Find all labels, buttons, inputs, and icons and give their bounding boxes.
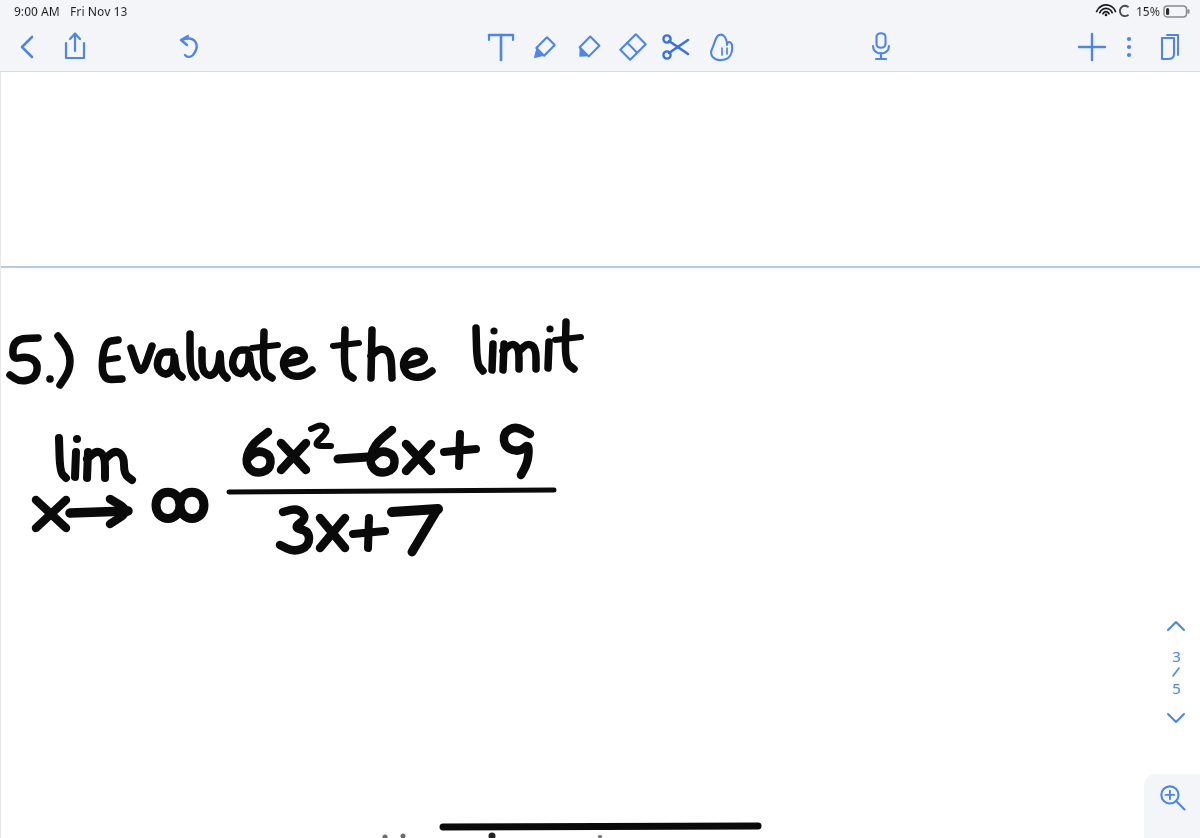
staticText: 3 <box>1172 646 1181 666</box>
staticText: Fri Nov 13 <box>70 3 128 19</box>
button[interactable]: Cut <box>655 25 699 69</box>
button[interactable]: Select <box>699 25 743 69</box>
button[interactable]: More options <box>1114 25 1144 69</box>
staticText: 5 <box>1172 678 1181 698</box>
button[interactable]: Zoom in <box>1144 774 1200 838</box>
staticText: 9:00 AM <box>14 3 60 19</box>
button[interactable]: Add page <box>1070 25 1114 69</box>
button[interactable]: Record audio <box>859 25 903 69</box>
staticText: 15% <box>1136 3 1160 19</box>
button[interactable]: Next page <box>1156 704 1196 732</box>
button[interactable]: Text tool <box>479 25 523 69</box>
button[interactable]: Eraser tool <box>611 25 655 69</box>
button[interactable]: Highlighter tool <box>567 25 611 69</box>
button[interactable]: Previous page <box>1156 612 1196 640</box>
button[interactable]: Share <box>53 25 97 69</box>
button[interactable]: Back <box>5 25 49 69</box>
button[interactable]: Undo <box>169 25 213 69</box>
button[interactable]: Pen tool <box>523 25 567 69</box>
button[interactable]: Pages <box>1148 25 1192 69</box>
